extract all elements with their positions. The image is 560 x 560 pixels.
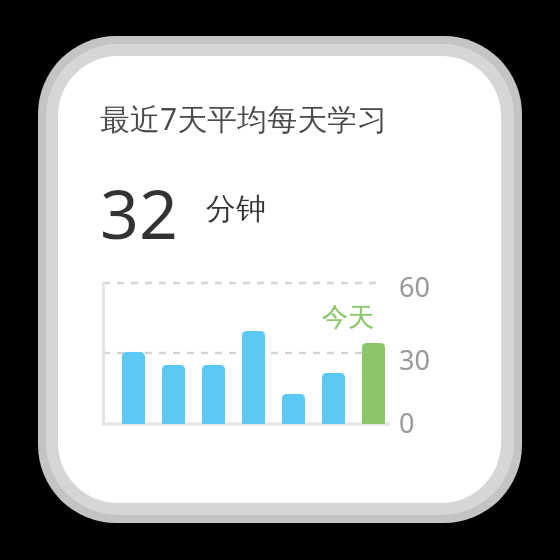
staticText: 今天 xyxy=(322,301,374,334)
staticText: 分钟 xyxy=(206,190,266,228)
staticText: 32 xyxy=(100,166,178,259)
staticText: 60 xyxy=(399,268,430,305)
staticText: 0 xyxy=(399,404,415,441)
staticText: 30 xyxy=(399,341,430,378)
button[interactable]: Study statistics tile xyxy=(58,56,501,503)
staticText: 最近7天平均每天学习 xyxy=(100,98,388,139)
